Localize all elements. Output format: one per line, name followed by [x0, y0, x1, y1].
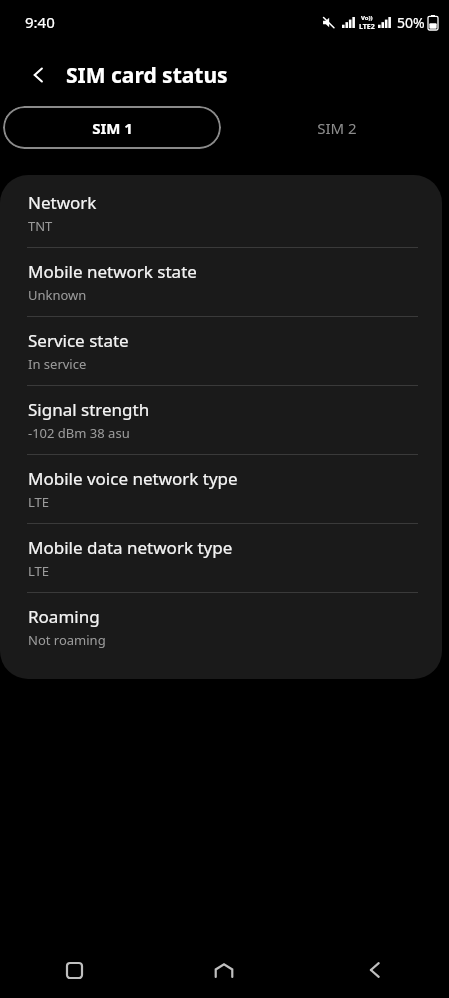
staticText: Signal strength — [28, 398, 150, 421]
button[interactable]: Mobile network state — [0, 248, 442, 316]
button[interactable]: Signal strength — [0, 386, 442, 454]
staticText: LTE2 — [359, 22, 375, 32]
staticText: LTE — [28, 493, 50, 511]
button[interactable]: Mobile data network type — [0, 524, 442, 592]
button[interactable]: Mobile voice network type — [0, 455, 442, 523]
staticText: SIM card status — [66, 61, 228, 90]
staticText: TNT — [28, 217, 53, 235]
staticText: Mobile voice network type — [28, 467, 238, 490]
button[interactable]: SIM 2 — [224, 106, 449, 149]
button[interactable]: Recents — [0, 942, 149, 998]
staticText: -102 dBm 38 asu — [28, 424, 130, 442]
staticText: In service — [28, 355, 87, 373]
button[interactable]: Service state — [0, 317, 442, 385]
staticText: Roaming — [28, 605, 100, 628]
button[interactable]: Back — [299, 942, 449, 998]
button[interactable]: SIM 1 — [3, 106, 221, 149]
staticText: SIM 2 — [317, 118, 357, 138]
button[interactable]: Roaming — [0, 593, 442, 661]
staticText: 9:40 — [25, 12, 55, 32]
button[interactable]: Home — [149, 942, 299, 998]
staticText: Mobile data network type — [28, 536, 233, 559]
staticText: SIM 1 — [92, 118, 133, 138]
staticText: Mobile network state — [28, 260, 197, 283]
staticText: Network — [28, 191, 97, 214]
staticText: Not roaming — [28, 631, 106, 649]
button[interactable]: Network — [0, 175, 442, 247]
staticText: LTE — [28, 562, 50, 580]
staticText: Service state — [28, 329, 129, 352]
staticText: Vo)) — [361, 14, 373, 22]
staticText: 50% — [397, 13, 425, 32]
staticText: Unknown — [28, 286, 87, 304]
button[interactable]: Back — [18, 54, 60, 96]
